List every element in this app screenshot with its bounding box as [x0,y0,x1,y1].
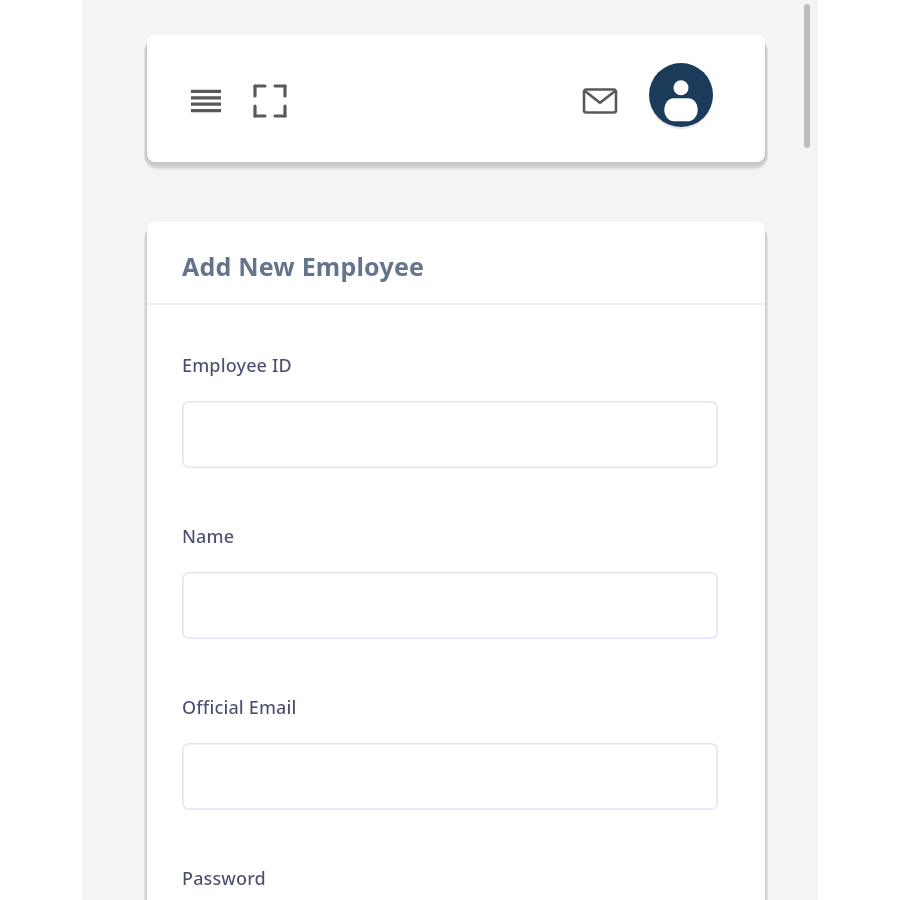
staticText: Name [182,524,235,549]
staticText: Add New Employee [182,249,425,283]
button[interactable]: Fullscreen [248,79,292,123]
button[interactable] [182,743,718,810]
button[interactable] [182,572,718,639]
button[interactable]: Profile [649,63,713,127]
staticText: Employee ID [182,353,292,378]
button[interactable]: Messages [578,79,622,123]
staticText: Official Email [182,695,297,720]
button[interactable]: Menu [184,79,228,123]
button[interactable] [182,401,718,468]
staticText: Password [182,866,266,891]
